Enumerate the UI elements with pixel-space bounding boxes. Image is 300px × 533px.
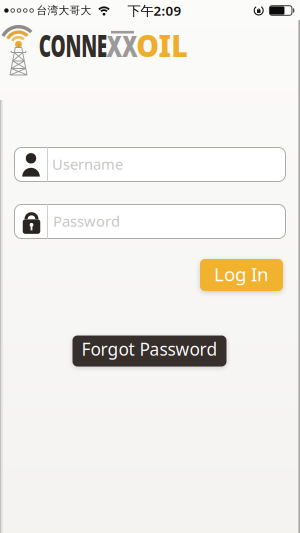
staticText: Username	[52, 154, 123, 174]
button[interactable]: Forgot Password	[72, 335, 226, 366]
staticText: OIL	[135, 26, 188, 65]
button[interactable]: Password	[14, 204, 286, 239]
staticText: Log In	[214, 262, 269, 286]
staticText: CONNE	[20, 26, 125, 65]
staticText: 下午2:09	[127, 2, 181, 19]
staticText: Password	[53, 211, 120, 231]
button[interactable]: Log In	[200, 259, 283, 291]
staticText: XX	[101, 26, 143, 65]
staticText: Forgot Password	[81, 337, 217, 360]
button[interactable]: Username	[14, 147, 286, 182]
staticText: 台湾大哥大	[36, 4, 91, 17]
